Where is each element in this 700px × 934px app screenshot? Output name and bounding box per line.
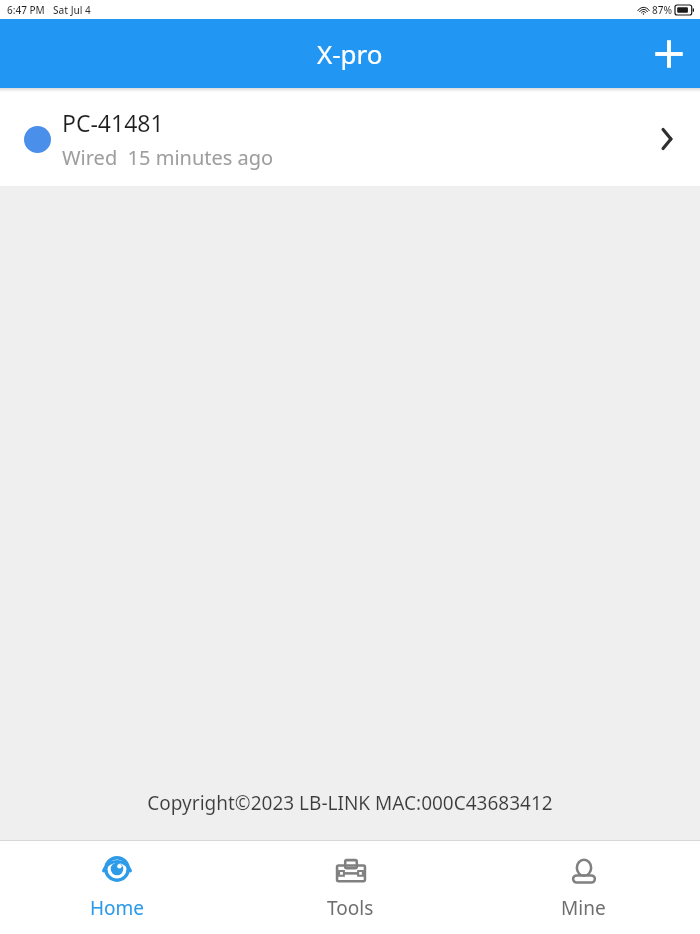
staticText: Wired 15 minutes ago bbox=[62, 144, 274, 171]
staticText: Home bbox=[90, 895, 145, 921]
button[interactable]: Add device bbox=[638, 19, 700, 88]
staticText: 87% bbox=[652, 3, 672, 17]
staticText: Tools bbox=[327, 895, 374, 921]
staticText: Sat Jul 4 bbox=[53, 3, 91, 17]
staticText: 6:47 PM bbox=[7, 3, 45, 17]
button[interactable]: Mine bbox=[467, 841, 700, 934]
staticText: Copyright©2023 LB-LINK MAC:000C43683412 bbox=[147, 790, 553, 816]
staticText: Mine bbox=[561, 895, 606, 921]
button[interactable]: Home bbox=[0, 841, 234, 934]
staticText: X-pro bbox=[317, 36, 383, 71]
button[interactable]: Tools bbox=[234, 841, 467, 934]
staticText: PC-41481 bbox=[62, 107, 164, 138]
button[interactable]: PC-41481 bbox=[0, 92, 700, 186]
